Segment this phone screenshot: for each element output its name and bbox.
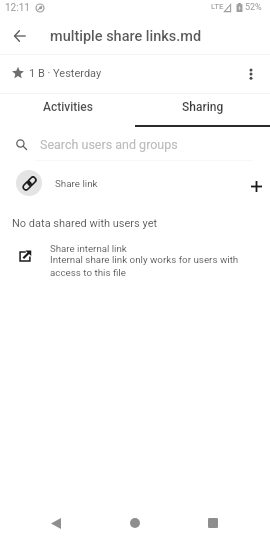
staticText: Sharing (182, 100, 224, 114)
staticText: Internal share link only works for users… (50, 254, 240, 278)
button[interactable] (0, 166, 270, 200)
button[interactable]: Recent apps (190, 501, 236, 540)
staticText: Share internal link (50, 243, 127, 254)
button[interactable]: Activities (0, 88, 135, 126)
button[interactable] (0, 240, 270, 282)
staticText: Search users and groups (40, 137, 178, 152)
staticText: LTE (211, 2, 224, 11)
staticText: Activities (43, 100, 93, 114)
staticText: Share link (55, 178, 98, 189)
staticText: 12:11 (5, 2, 30, 14)
button[interactable]: Add share link (243, 173, 270, 200)
button[interactable]: Back (33, 501, 79, 540)
button[interactable] (0, 53, 270, 86)
staticText: 1 B · Yesterday (29, 67, 102, 80)
button[interactable]: Home (112, 501, 158, 540)
button[interactable]: Back (6, 22, 33, 49)
staticText: multiple share links.md (50, 28, 202, 45)
staticText: No data shared with users yet (12, 217, 158, 230)
button[interactable]: More options (238, 61, 264, 87)
button[interactable] (0, 130, 270, 160)
staticText: 52% (245, 2, 262, 13)
button[interactable]: Sharing (135, 88, 270, 126)
